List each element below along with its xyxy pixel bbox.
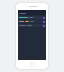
button[interactable]: Action	[43, 21, 45, 23]
button[interactable]: Action	[18, 24, 46, 27]
button[interactable]: Action	[43, 25, 45, 27]
button[interactable]: Action	[18, 20, 46, 23]
button[interactable]: Action	[43, 17, 45, 19]
button[interactable]: Action	[18, 16, 46, 19]
button[interactable]: Home	[30, 62, 35, 67]
